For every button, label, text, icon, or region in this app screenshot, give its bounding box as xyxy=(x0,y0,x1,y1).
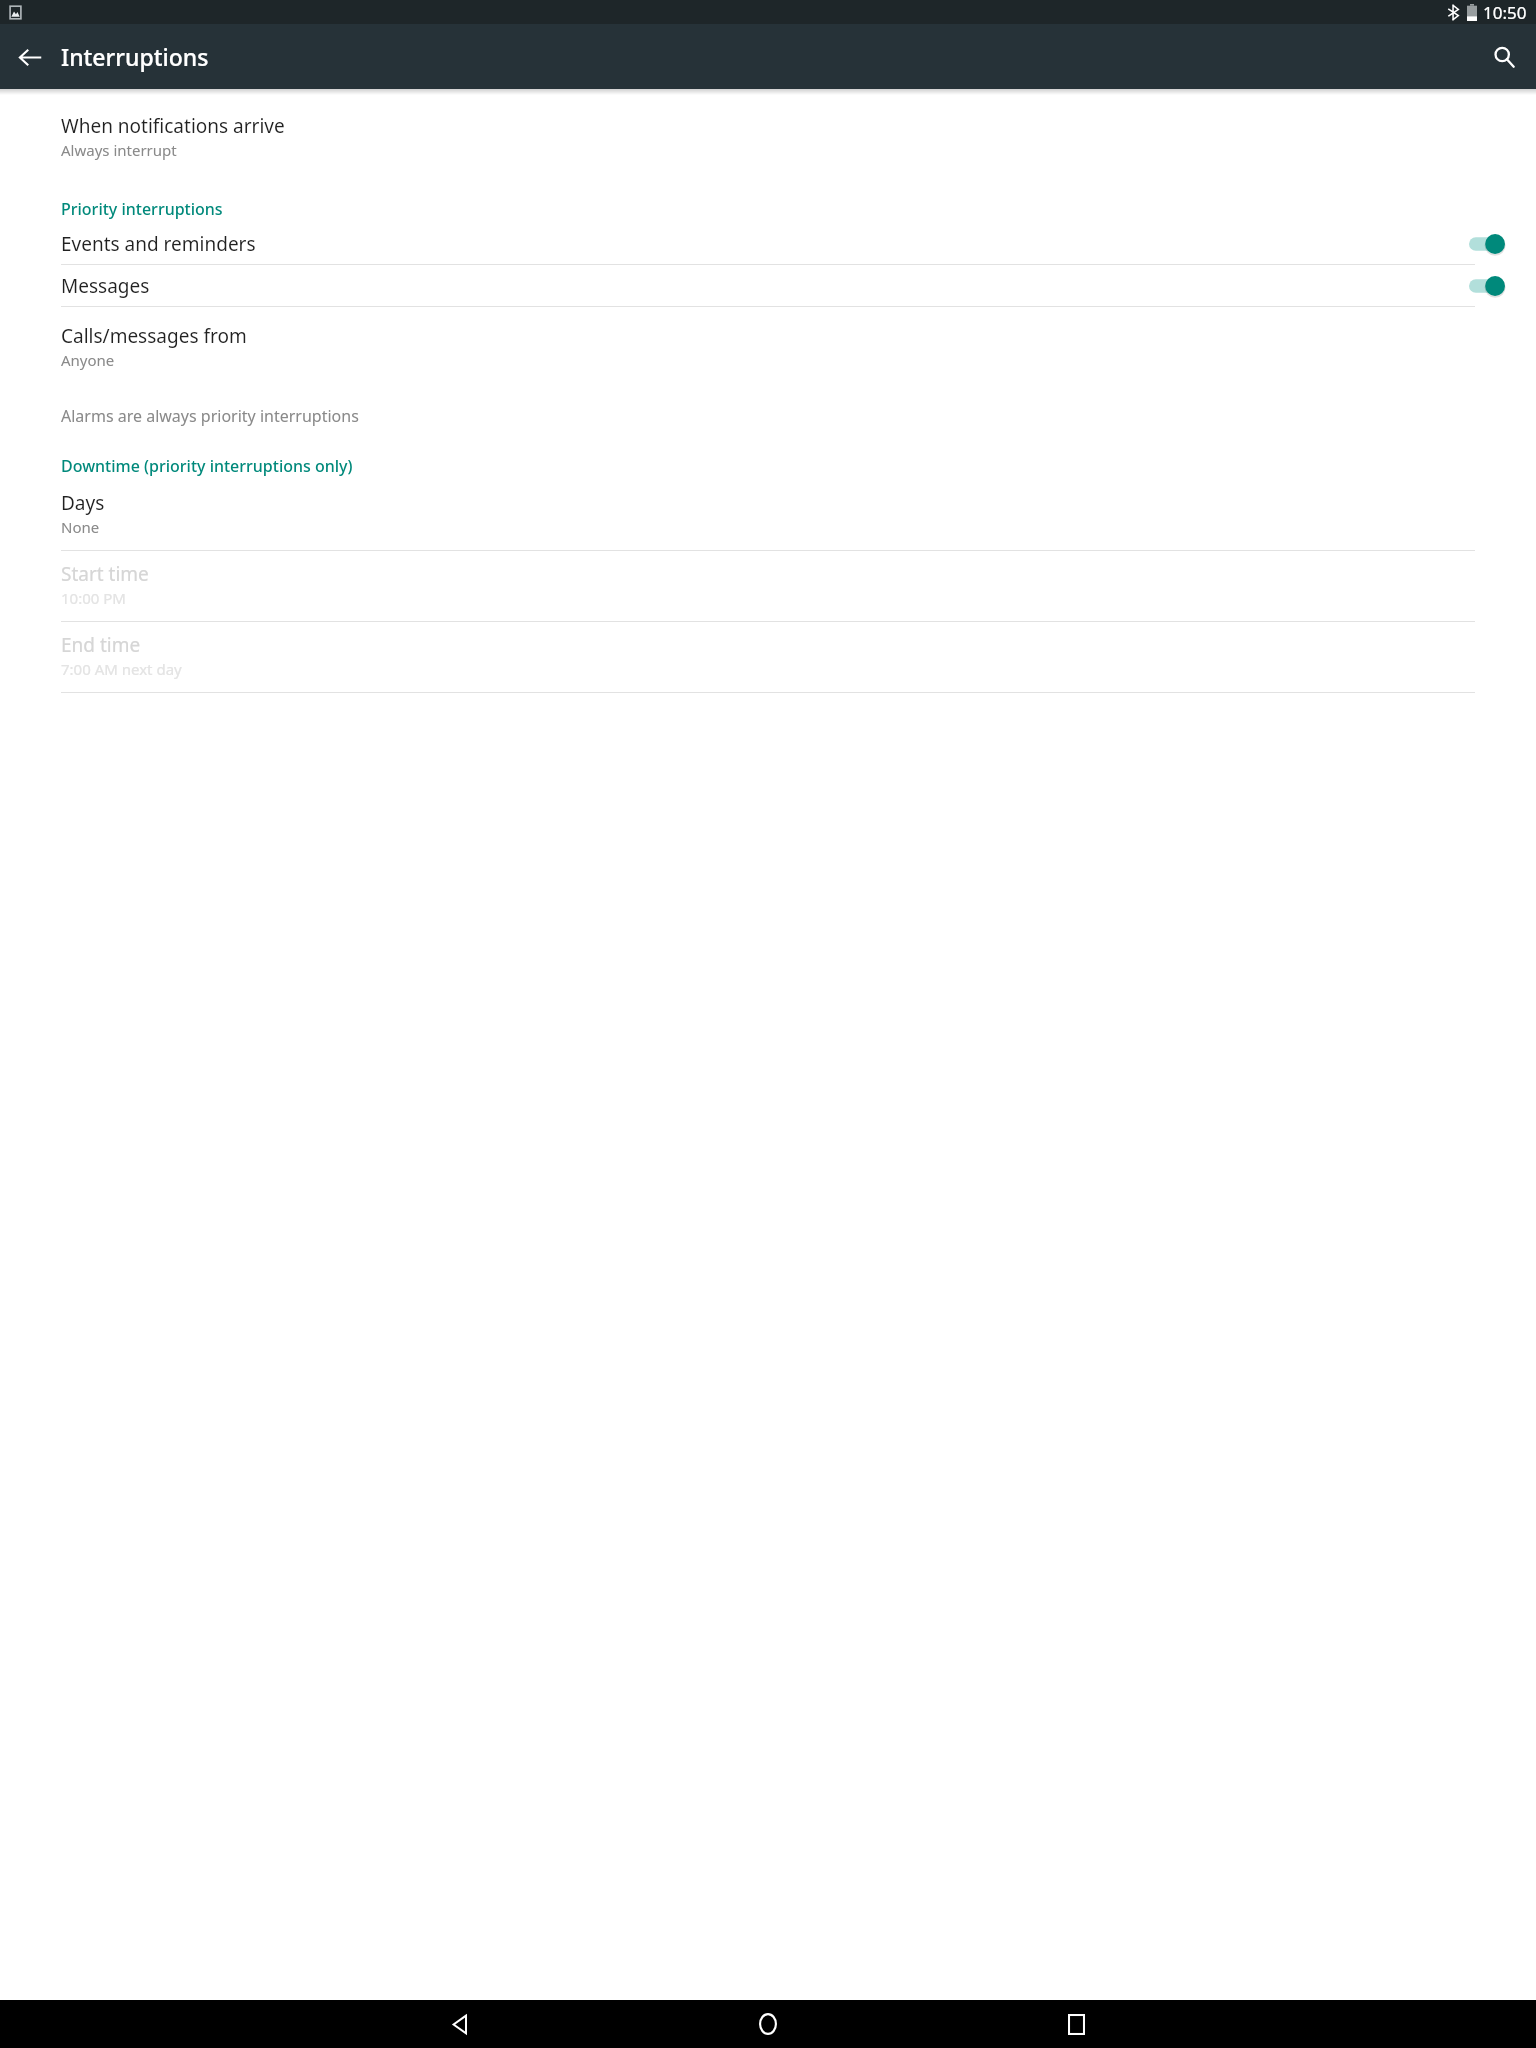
button[interactable]: Search xyxy=(1480,33,1528,81)
staticText: Interruptions xyxy=(61,41,209,72)
button[interactable]: Back xyxy=(436,2000,484,2048)
button[interactable]: Messages xyxy=(0,265,1536,306)
staticText: Priority interruptions xyxy=(61,198,223,220)
staticText: Downtime (priority interruptions only) xyxy=(61,455,353,477)
button[interactable]: Calls/messages from xyxy=(0,313,1536,383)
staticText: Anyone xyxy=(61,350,115,370)
staticText: End time xyxy=(61,632,141,658)
button[interactable]: Navigate up xyxy=(6,33,54,81)
staticText: 7:00 AM next day xyxy=(61,659,182,679)
staticText: Alarms are always priority interruptions xyxy=(61,405,359,427)
staticText: 10:50 xyxy=(1483,1,1527,24)
button[interactable]: Events and reminders xyxy=(0,223,1536,264)
staticText: None xyxy=(61,517,100,537)
staticText: Days xyxy=(61,490,105,516)
staticText: Calls/messages from xyxy=(61,323,247,349)
staticText: 10:00 PM xyxy=(61,588,126,608)
staticText: When notifications arrive xyxy=(61,113,285,139)
button[interactable]: Recent apps xyxy=(1052,2000,1100,2048)
button[interactable]: Days xyxy=(0,480,1536,550)
button[interactable]: When notifications arrive xyxy=(0,103,1536,173)
staticText: Messages xyxy=(61,273,1469,299)
staticText: Events and reminders xyxy=(61,231,1469,257)
button[interactable]: Home xyxy=(744,2000,792,2048)
staticText: Start time xyxy=(61,561,149,587)
staticText: Always interrupt xyxy=(61,140,177,160)
